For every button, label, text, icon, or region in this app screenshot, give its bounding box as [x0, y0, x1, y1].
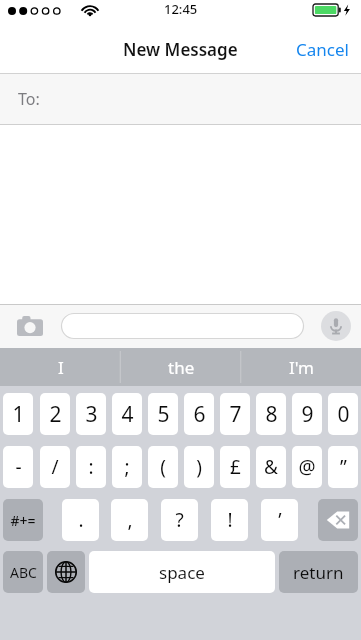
button[interactable]: 5 — [148, 393, 178, 435]
button[interactable]: ” — [328, 446, 358, 488]
staticText: return — [293, 561, 344, 584]
button[interactable]: the — [121, 348, 241, 386]
button[interactable]: ? — [161, 499, 198, 541]
button[interactable]: @ — [292, 446, 322, 488]
staticText: 4 — [121, 400, 134, 429]
button[interactable]: Camera — [10, 306, 50, 346]
staticText: New Message — [123, 38, 238, 61]
staticText: #+= — [10, 511, 36, 530]
button[interactable]: & — [256, 446, 286, 488]
staticText: I'm — [289, 356, 314, 379]
staticText: : — [88, 454, 94, 480]
button[interactable]: return — [279, 551, 358, 593]
button[interactable]: I'm — [241, 348, 361, 386]
button[interactable]: 0 — [328, 393, 358, 435]
staticText: £ — [230, 454, 241, 480]
button[interactable]: 9 — [292, 393, 322, 435]
staticText: & — [264, 454, 278, 480]
staticText: 0 — [337, 400, 350, 429]
button[interactable]: 4 — [112, 393, 142, 435]
staticText: ’ — [278, 507, 282, 533]
button[interactable]: ( — [148, 446, 178, 488]
staticText: 12:45 — [164, 0, 198, 18]
staticText: 3 — [85, 400, 98, 429]
staticText: ) — [196, 454, 202, 480]
staticText: ( — [160, 454, 166, 480]
staticText: space — [159, 561, 205, 584]
button[interactable]: : — [76, 446, 106, 488]
button[interactable]: 1 — [3, 393, 33, 435]
button[interactable]: 6 — [184, 393, 214, 435]
button[interactable]: I — [0, 348, 121, 386]
button[interactable]: - — [3, 446, 33, 488]
staticText: To: — [18, 88, 40, 110]
button[interactable]: Next keyboard — [47, 551, 85, 593]
staticText: @ — [298, 454, 316, 480]
staticText: 9 — [301, 400, 314, 429]
staticText: - — [15, 454, 22, 480]
staticText: . — [78, 507, 84, 533]
staticText: / — [51, 454, 59, 480]
staticText: ? — [175, 507, 184, 533]
button[interactable]: / — [40, 446, 70, 488]
button[interactable]: 7 — [220, 393, 250, 435]
staticText: the — [168, 356, 195, 379]
staticText: 5 — [157, 400, 170, 429]
staticText: 1 — [12, 400, 25, 429]
button[interactable] — [61, 313, 304, 339]
staticText: 2 — [49, 400, 62, 429]
staticText: ! — [227, 507, 233, 533]
staticText: ” — [340, 454, 347, 480]
staticText: ; — [124, 454, 130, 480]
button[interactable]: Delete — [318, 499, 358, 541]
button[interactable]: , — [111, 499, 148, 541]
button[interactable]: Dictate — [319, 309, 353, 343]
button[interactable]: To: — [0, 74, 361, 125]
staticText: , — [127, 507, 133, 533]
button[interactable]: 3 — [76, 393, 106, 435]
staticText: ABC — [10, 563, 37, 582]
button[interactable]: . — [62, 499, 99, 541]
button[interactable]: 2 — [40, 393, 70, 435]
button[interactable]: £ — [220, 446, 250, 488]
staticText: I — [58, 356, 64, 379]
staticText: 6 — [193, 400, 206, 429]
button[interactable]: Cancel — [284, 30, 361, 69]
staticText: 8 — [265, 400, 278, 429]
button[interactable]: 8 — [256, 393, 286, 435]
button[interactable]: ABC — [3, 551, 43, 593]
button[interactable]: space — [89, 551, 275, 593]
button[interactable]: ’ — [261, 499, 298, 541]
button[interactable]: ! — [211, 499, 248, 541]
button[interactable]: #+= — [3, 499, 43, 541]
button[interactable]: ; — [112, 446, 142, 488]
button[interactable]: ) — [184, 446, 214, 488]
staticText: 7 — [229, 400, 242, 429]
staticText: Cancel — [296, 38, 349, 61]
